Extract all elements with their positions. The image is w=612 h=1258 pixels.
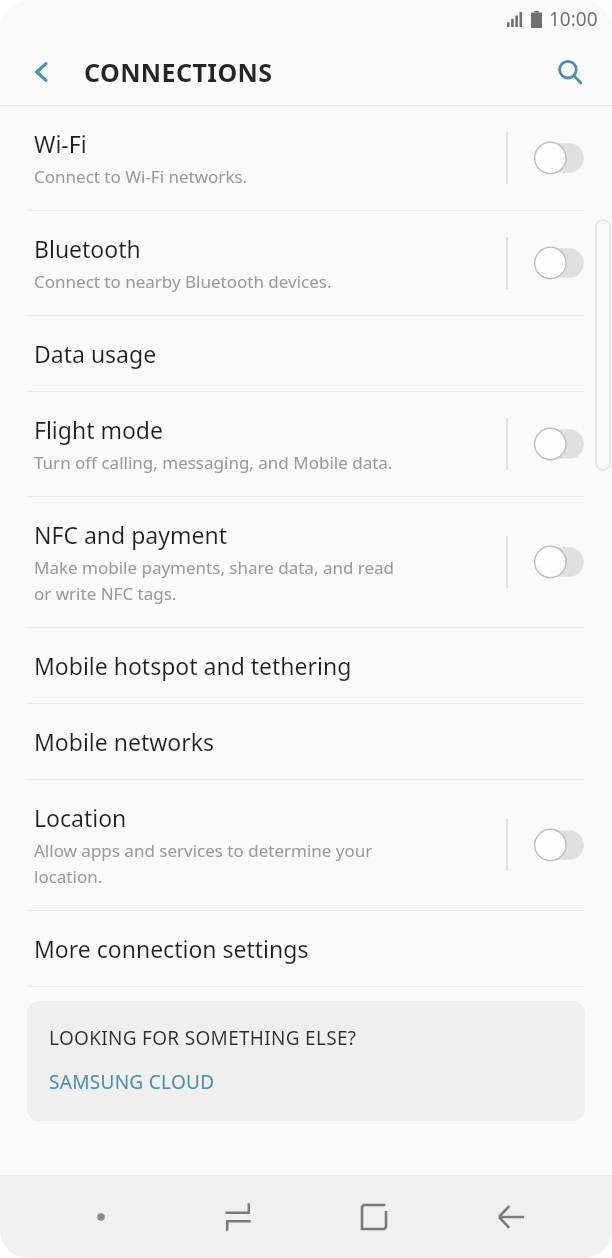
button[interactable]: Menu bbox=[65, 1181, 137, 1253]
button[interactable]: Location toggle bbox=[528, 826, 590, 864]
staticText: Connect to Wi-Fi networks. bbox=[34, 165, 248, 188]
button[interactable]: Data usage bbox=[0, 316, 612, 391]
button[interactable]: Flight mode toggle bbox=[528, 425, 590, 463]
staticText: Connect to nearby Bluetooth devices. bbox=[34, 270, 332, 293]
button[interactable]: Wi-Fi toggle bbox=[528, 139, 590, 177]
staticText: Data usage bbox=[34, 338, 157, 369]
button[interactable]: NFC and payment bbox=[0, 497, 612, 627]
button[interactable]: SAMSUNG CLOUD bbox=[49, 1069, 215, 1095]
staticText: Wi-Fi bbox=[34, 128, 87, 159]
staticText: NFC and payment bbox=[34, 519, 227, 550]
staticText: CONNECTIONS bbox=[84, 55, 273, 89]
staticText: Allow apps and services to determine you… bbox=[34, 839, 373, 888]
staticText: More connection settings bbox=[34, 933, 309, 964]
staticText: Flight mode bbox=[34, 414, 163, 445]
button[interactable]: NFC and payment toggle bbox=[528, 543, 590, 581]
staticText: Make mobile payments, share data, and re… bbox=[34, 556, 395, 605]
staticText: 10:00 bbox=[549, 6, 598, 32]
staticText: Bluetooth bbox=[34, 233, 141, 264]
button[interactable]: Location bbox=[0, 780, 612, 910]
button[interactable]: Bluetooth toggle bbox=[528, 244, 590, 282]
button[interactable]: Back bbox=[475, 1181, 547, 1253]
button[interactable]: Search bbox=[546, 48, 594, 96]
staticText: Turn off calling, messaging, and Mobile … bbox=[34, 451, 393, 474]
staticText: LOOKING FOR SOMETHING ELSE? bbox=[49, 1025, 357, 1051]
staticText: Mobile networks bbox=[34, 726, 215, 757]
button[interactable]: Flight mode bbox=[0, 392, 612, 496]
button[interactable]: Mobile networks bbox=[0, 704, 612, 779]
button[interactable]: Bluetooth bbox=[0, 211, 612, 315]
button[interactable]: Back bbox=[18, 48, 66, 96]
staticText: Location bbox=[34, 802, 127, 833]
button[interactable]: Home bbox=[338, 1181, 410, 1253]
staticText: SAMSUNG CLOUD bbox=[49, 1069, 215, 1095]
button[interactable]: Wi-Fi bbox=[0, 106, 612, 210]
button[interactable]: Recents bbox=[202, 1181, 274, 1253]
staticText: Mobile hotspot and tethering bbox=[34, 650, 352, 681]
button[interactable]: LOOKING FOR SOMETHING ELSE? bbox=[27, 1001, 585, 1121]
button[interactable]: Mobile hotspot and tethering bbox=[0, 628, 612, 703]
button[interactable]: More connection settings bbox=[0, 911, 612, 986]
